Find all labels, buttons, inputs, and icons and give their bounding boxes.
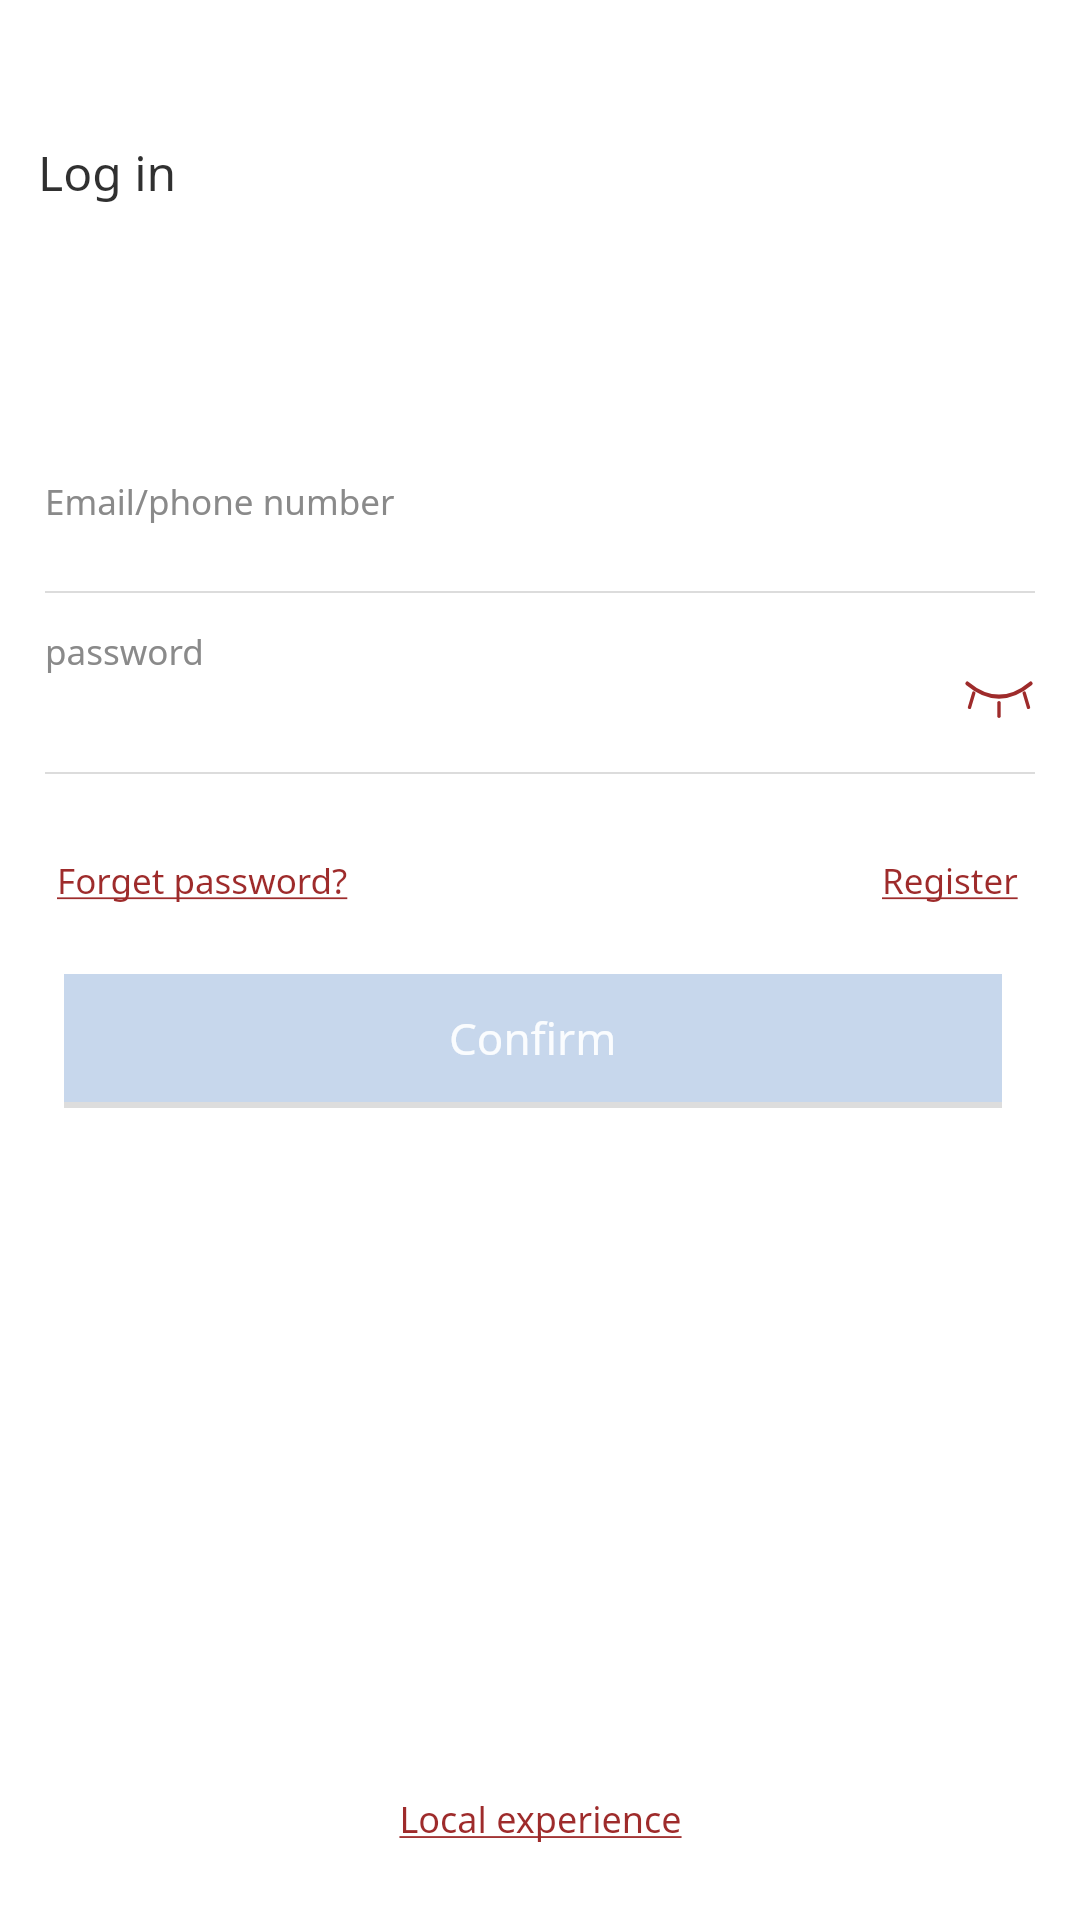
staticText: Forget password? [57,857,348,905]
staticText: Local experience [399,1795,682,1844]
staticText: Email/phone number [45,478,395,526]
staticText: Confirm [449,1008,617,1068]
button[interactable]: Register [882,857,1018,905]
staticText: Log in [38,140,177,205]
staticText: password [45,628,204,676]
button[interactable]: password [45,612,1035,692]
button[interactable]: Forget password? [57,857,348,905]
button[interactable]: Confirm [64,974,1002,1102]
button[interactable]: Local experience [399,1795,682,1844]
button[interactable]: Email/phone number [45,462,1035,542]
staticText: Register [882,857,1018,905]
button[interactable]: Show password [958,652,1040,734]
